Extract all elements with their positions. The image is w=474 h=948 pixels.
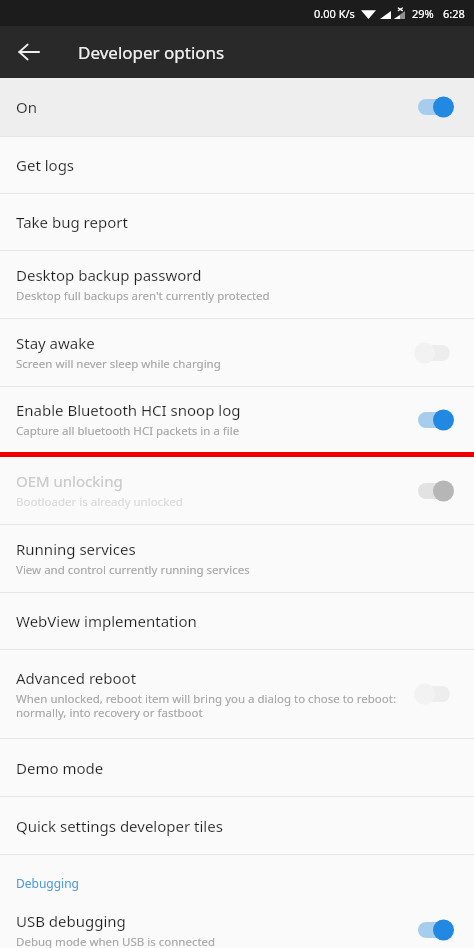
staticText: Advanced reboot — [16, 668, 137, 688]
staticText: Bootloader is already unlocked — [16, 494, 183, 510]
button[interactable]: Running services — [0, 525, 474, 592]
staticText: USB debugging — [16, 911, 126, 931]
staticText: OEM unlocking — [16, 471, 123, 491]
button[interactable]: Demo mode — [0, 739, 474, 796]
staticText: Get logs — [16, 155, 75, 175]
staticText: 6:28 — [443, 6, 465, 21]
button[interactable]: Quick settings developer tiles — [0, 797, 474, 854]
staticText: Enable Bluetooth HCI snoop log — [16, 400, 241, 420]
staticText: Demo mode — [16, 758, 104, 778]
button[interactable]: OEM unlocking — [0, 457, 474, 524]
staticText: Debug mode when USB is connected — [16, 934, 216, 948]
button[interactable]: Advanced reboot — [0, 650, 474, 738]
button[interactable]: On — [0, 78, 474, 136]
staticText: Quick settings developer tiles — [16, 816, 223, 836]
button[interactable]: WebView implementation — [0, 593, 474, 649]
button[interactable]: Toggle — [408, 91, 460, 123]
button[interactable]: Get logs — [0, 137, 474, 193]
staticText: 29% — [412, 6, 434, 21]
button[interactable]: Toggle — [408, 337, 460, 369]
staticText: On — [16, 97, 408, 117]
button[interactable]: Desktop backup password — [0, 251, 474, 318]
staticText: Developer options — [78, 41, 225, 64]
button[interactable]: Stay awake — [0, 319, 474, 386]
button[interactable]: USB debugging — [0, 911, 474, 948]
staticText: Debugging — [16, 875, 79, 891]
staticText: Take bug report — [16, 212, 128, 232]
button[interactable]: Toggle — [408, 914, 460, 946]
staticText: Capture all bluetooth HCI packets in a f… — [16, 423, 240, 439]
staticText: WebView implementation — [16, 611, 197, 631]
button[interactable]: Toggle — [408, 475, 460, 507]
staticText: When unlocked, reboot item will bring yo… — [16, 691, 400, 720]
staticText: 0.00 K/s — [314, 6, 355, 21]
staticText: Desktop full backups aren't currently pr… — [16, 288, 270, 304]
staticText: Running services — [16, 539, 136, 559]
button[interactable]: Toggle — [408, 678, 460, 710]
button[interactable]: Take bug report — [0, 194, 474, 250]
button[interactable]: Enable Bluetooth HCI snoop log — [0, 387, 474, 452]
staticText: Screen will never sleep while charging — [16, 356, 221, 372]
button[interactable]: Back — [12, 35, 46, 69]
button[interactable]: Toggle — [408, 404, 460, 436]
staticText: Stay awake — [16, 333, 95, 353]
staticText: View and control currently running servi… — [16, 562, 250, 578]
staticText: Desktop backup password — [16, 265, 202, 285]
